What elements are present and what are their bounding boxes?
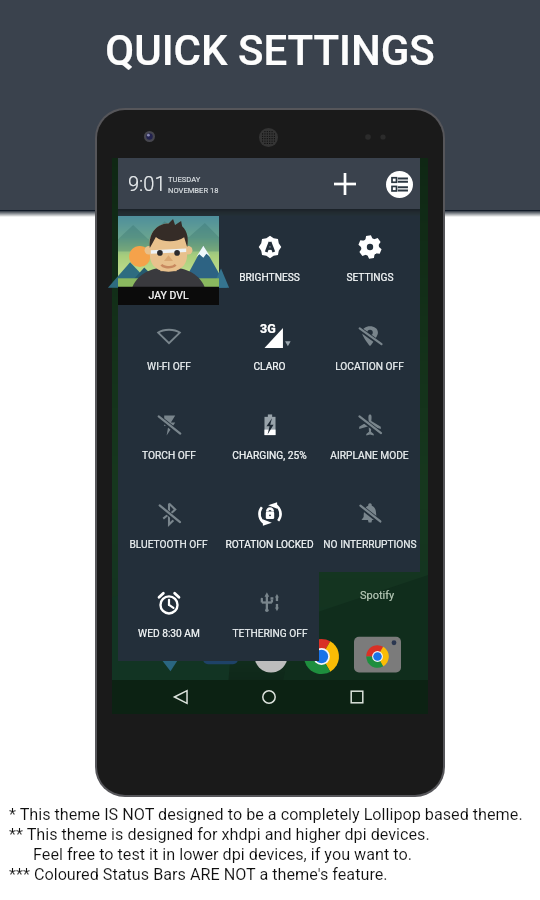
button[interactable]: Back xyxy=(165,680,197,714)
button[interactable]: SETTINGS xyxy=(319,216,420,305)
button[interactable]: Quick settings list xyxy=(386,171,413,198)
staticText: JAY DVL xyxy=(118,289,219,301)
staticText: WI-FI OFF xyxy=(147,361,191,373)
button[interactable]: CLARO xyxy=(219,305,320,394)
button[interactable]: NO INTERRUPTIONS xyxy=(319,483,420,572)
staticText: TETHERING OFF xyxy=(232,628,308,640)
button[interactable]: CHARGING, 25% xyxy=(219,394,320,483)
staticText: TUESDAY xyxy=(168,175,201,184)
button[interactable]: Home xyxy=(253,680,285,714)
staticText: 3G xyxy=(260,321,276,336)
button[interactable]: AIRPLANE MODE xyxy=(319,394,420,483)
staticText: ROTATION LOCKED xyxy=(225,539,314,551)
staticText: NOVEMBER 18 xyxy=(168,186,219,195)
button[interactable]: WED 8:30 AM xyxy=(118,572,219,661)
button[interactable]: LOCATION OFF xyxy=(319,305,420,394)
button[interactable]: ROTATION LOCKED xyxy=(219,483,320,572)
staticText: *** Coloured Status Bars ARE NOT a theme… xyxy=(9,865,388,885)
button[interactable]: User JAY DVL xyxy=(118,216,219,305)
button[interactable]: WI-FI OFF xyxy=(118,305,219,394)
button[interactable]: BLUETOOTH OFF xyxy=(118,483,219,572)
button[interactable]: TORCH OFF xyxy=(118,394,219,483)
button[interactable]: TETHERING OFF xyxy=(219,572,320,661)
staticText: Spotify xyxy=(360,589,395,602)
staticText: BRIGHTNESS xyxy=(239,272,300,284)
staticText: QUICK SETTINGS xyxy=(0,26,540,75)
staticText: CHARGING, 25% xyxy=(232,450,307,462)
staticText: 9:01 xyxy=(128,172,166,195)
button[interactable]: Add xyxy=(328,167,361,200)
staticText: TORCH OFF xyxy=(142,450,196,462)
staticText: AIRPLANE MODE xyxy=(330,450,409,462)
staticText: * This theme IS NOT designed to be a com… xyxy=(9,805,523,825)
staticText: ** This theme is designed for xhdpi and … xyxy=(9,825,430,845)
staticText: SETTINGS xyxy=(346,272,394,284)
staticText: WED 8:30 AM xyxy=(138,628,200,640)
staticText: Feel free to test it in lower dpi device… xyxy=(9,845,412,865)
staticText: CLARO xyxy=(253,361,286,373)
button[interactable]: BRIGHTNESS xyxy=(219,216,320,305)
button[interactable]: Recent apps xyxy=(341,680,373,714)
staticText: LOCATION OFF xyxy=(335,361,404,373)
staticText: NO INTERRUPTIONS xyxy=(323,539,417,551)
staticText: BLUETOOTH OFF xyxy=(129,539,208,551)
